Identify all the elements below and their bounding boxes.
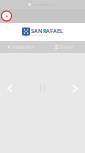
- button[interactable]: Next photo: [73, 85, 85, 92]
- button[interactable]: Habitaciones: [0, 44, 35, 50]
- staticText: HOTEL RESTAURANTE: [31, 35, 47, 37]
- button[interactable]: El Hotel: [0, 44, 74, 50]
- button[interactable]: Previous photo: [0, 85, 12, 92]
- button[interactable]: Chat with us: [0, 10, 12, 21]
- button[interactable]: San Rafael, home: [22, 27, 63, 37]
- staticText: SAN RAFAEL: [31, 27, 63, 35]
- staticText: El Hotel: [60, 44, 73, 50]
- staticText: Habitaciones: [12, 44, 34, 50]
